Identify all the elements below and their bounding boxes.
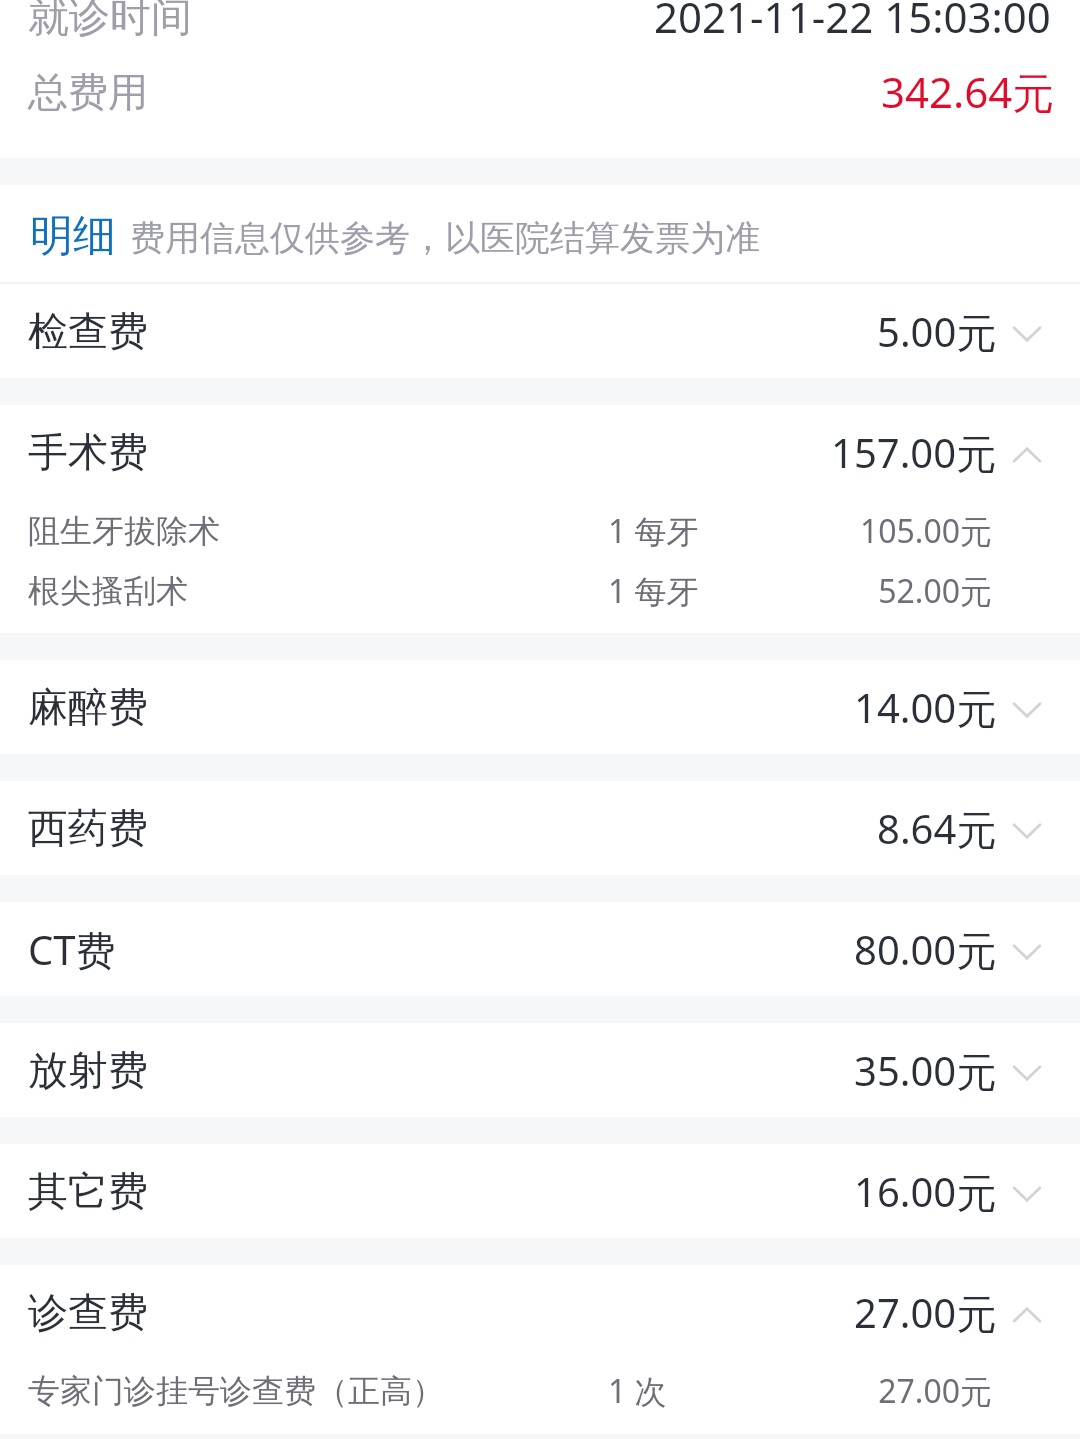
button[interactable]: 西药费 (0, 781, 1080, 875)
other: Expand section (1000, 922, 1054, 976)
staticText: 342.64元 (881, 63, 1055, 120)
staticText: 就诊时间 (28, 0, 192, 37)
button[interactable]: 阻生牙拔除术 (0, 499, 1080, 559)
button[interactable]: 根尖搔刮术 (0, 559, 1080, 619)
staticText: 157.00元 (831, 425, 997, 480)
button[interactable]: 检查费 (0, 284, 1080, 378)
other: Collapse section (1000, 1285, 1054, 1339)
staticText: 14.00元 (854, 680, 997, 735)
staticText: 1 次 (608, 1369, 667, 1413)
staticText: 麻醉费 (28, 682, 148, 732)
other: Collapse section (1000, 425, 1054, 479)
staticText: 阻生牙拔除术 (28, 511, 220, 551)
staticText: 2021-11-22 15:03:00 (654, 0, 1051, 33)
button[interactable]: 手术费 (0, 405, 1080, 499)
button[interactable]: 总费用 (0, 45, 1080, 158)
staticText: 5.00元 (877, 304, 997, 359)
staticText: 其它费 (28, 1166, 148, 1216)
staticText: 总费用 (28, 67, 148, 117)
staticText: 费用信息仅供参考，以医院结算发票为准 (130, 216, 760, 260)
staticText: 根尖搔刮术 (28, 571, 188, 611)
staticText: 52.00元 (878, 569, 992, 613)
button[interactable]: 放射费 (0, 1023, 1080, 1117)
staticText: 80.00元 (854, 922, 997, 977)
staticText: 105.00元 (859, 509, 992, 553)
other: Expand section (1000, 801, 1054, 855)
other: Expand section (1000, 1164, 1054, 1218)
staticText: 27.00元 (854, 1285, 997, 1340)
button[interactable]: 专家门诊挂号诊查费（正高） (0, 1359, 1080, 1419)
staticText: 明细 (30, 209, 116, 263)
staticText: 西药费 (28, 803, 148, 853)
staticText: 放射费 (28, 1045, 148, 1095)
staticText: 1 每牙 (608, 509, 699, 553)
button[interactable]: 就诊时间 (0, 0, 1080, 45)
staticText: 诊查费 (28, 1287, 148, 1337)
button[interactable]: 其它费 (0, 1144, 1080, 1238)
button[interactable]: 麻醉费 (0, 660, 1080, 754)
button[interactable]: 诊查费 (0, 1265, 1080, 1359)
staticText: 27.00元 (878, 1369, 992, 1413)
other: Expand section (1000, 680, 1054, 734)
staticText: 专家门诊挂号诊查费（正高） (28, 1371, 444, 1411)
staticText: 8.64元 (877, 801, 997, 856)
staticText: 手术费 (28, 427, 148, 477)
staticText: 35.00元 (854, 1043, 997, 1098)
staticText: CT费 (28, 922, 116, 977)
button[interactable]: 明细 (0, 185, 1080, 282)
other: Expand section (1000, 1043, 1054, 1097)
other: Expand section (1000, 304, 1054, 358)
staticText: 检查费 (28, 306, 148, 356)
staticText: 16.00元 (854, 1164, 997, 1219)
staticText: 1 每牙 (608, 569, 699, 613)
button[interactable]: CT费 (0, 902, 1080, 996)
